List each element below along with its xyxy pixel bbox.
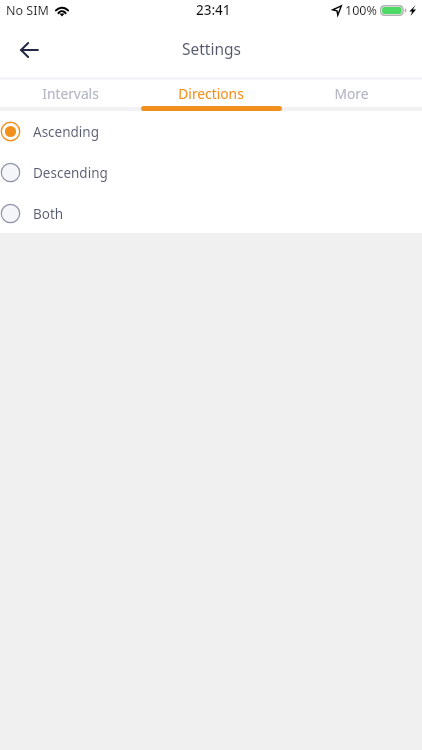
- staticText: 100%: [345, 2, 377, 19]
- staticText: Directions: [178, 84, 244, 103]
- staticText: Intervals: [42, 84, 99, 103]
- button[interactable]: Ascending: [0, 111, 422, 152]
- staticText: Ascending: [33, 123, 99, 141]
- staticText: 23:41: [196, 1, 231, 19]
- button[interactable]: Descending: [0, 152, 422, 193]
- staticText: Both: [33, 205, 64, 223]
- staticText: Descending: [33, 164, 108, 182]
- staticText: Settings: [182, 38, 241, 59]
- staticText: More: [334, 84, 369, 103]
- button[interactable]: Both: [0, 193, 422, 234]
- button[interactable]: Directions: [140, 79, 281, 111]
- button[interactable]: More: [281, 79, 422, 111]
- button[interactable]: Back: [0, 28, 52, 77]
- staticText: No SIM: [6, 2, 49, 19]
- button[interactable]: Intervals: [0, 79, 140, 111]
